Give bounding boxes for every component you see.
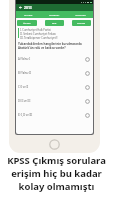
staticText: Yorumlar (75, 13, 86, 16)
button[interactable]: Bitir (45, 20, 64, 26)
staticText: Sonraki (77, 22, 86, 25)
button[interactable]: A) Yalnız I (16, 52, 93, 66)
staticText: III. Terakkiperver Cumhuriyet F. (20, 36, 59, 40)
staticText: II. Serbest Cumhuriyet Fırkası (20, 32, 56, 36)
staticText: I. Cumhuriyet Halk Partisi (20, 28, 51, 32)
button[interactable]: Sonraki (72, 20, 91, 26)
staticText: A) Yalnız I (18, 57, 85, 61)
button[interactable]: Cevaplar (41, 11, 67, 18)
staticText: D) II ve III (18, 99, 85, 103)
staticText: Önceki (23, 22, 31, 25)
staticText: Yukarıdakilerden hangilerinin kurulmasın… (18, 42, 82, 50)
staticText: B) Yalnız II (18, 71, 85, 75)
button[interactable]: Önceki (17, 20, 37, 26)
button[interactable]: Sorular (16, 11, 41, 18)
button[interactable]: D) II ve III (16, 94, 93, 108)
staticText: C) I ve II (18, 85, 85, 89)
button[interactable]: E) I, II ve III (16, 108, 93, 122)
staticText: Sorular (24, 13, 33, 16)
button[interactable]: Back (16, 4, 24, 11)
button[interactable]: Yorumlar (67, 11, 93, 18)
button[interactable]: B) Yalnız II (16, 66, 93, 80)
staticText: 2013 (24, 5, 32, 10)
staticText: KPSS Çıkmış sorulara erişim hiç bu kadar… (0, 154, 113, 193)
staticText: Cevaplar (49, 13, 60, 16)
staticText: E) I, II ve III (18, 113, 85, 117)
staticText: Bitir (52, 22, 57, 25)
button[interactable]: C) I ve II (16, 80, 93, 94)
